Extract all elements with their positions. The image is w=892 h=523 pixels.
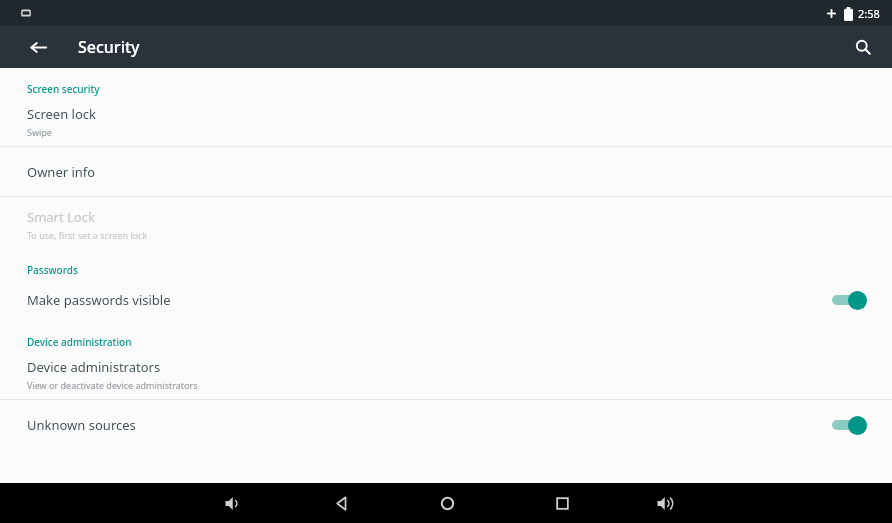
button[interactable]: Search <box>846 30 880 64</box>
staticText: Device administration <box>27 335 132 349</box>
staticText: Smart Lock <box>27 208 95 226</box>
button[interactable]: Device administrators <box>0 349 892 399</box>
staticText: 2:58 <box>858 6 880 21</box>
staticText: Screen lock <box>27 105 96 123</box>
button[interactable]: Volume up <box>646 484 684 522</box>
staticText: To use, first set a screen lock <box>27 229 148 241</box>
staticText: Swipe <box>27 126 52 138</box>
staticText: Security <box>78 36 140 58</box>
staticText: Passwords <box>27 263 78 277</box>
button[interactable]: Screen lock <box>0 96 892 146</box>
staticText: Screen security <box>27 82 100 96</box>
button[interactable]: Toggle Make passwords visible <box>828 287 870 313</box>
button[interactable]: Smart Lock <box>0 197 892 252</box>
staticText: Make passwords visible <box>27 291 171 309</box>
button[interactable]: Toggle Unknown sources <box>828 412 870 438</box>
button[interactable]: Volume down <box>214 484 252 522</box>
staticText: Device administrators <box>27 358 161 376</box>
button[interactable]: Make passwords visible <box>0 277 892 323</box>
button[interactable]: Recents <box>543 484 581 522</box>
button[interactable]: Home <box>428 484 466 522</box>
staticText: View or deactivate device administrators <box>27 379 198 391</box>
staticText: Unknown sources <box>27 416 136 434</box>
button[interactable]: Back <box>323 484 361 522</box>
button[interactable]: Unknown sources <box>0 400 892 450</box>
button[interactable]: Owner info <box>0 147 892 196</box>
button[interactable]: Back <box>22 31 54 63</box>
staticText: Owner info <box>27 163 96 181</box>
